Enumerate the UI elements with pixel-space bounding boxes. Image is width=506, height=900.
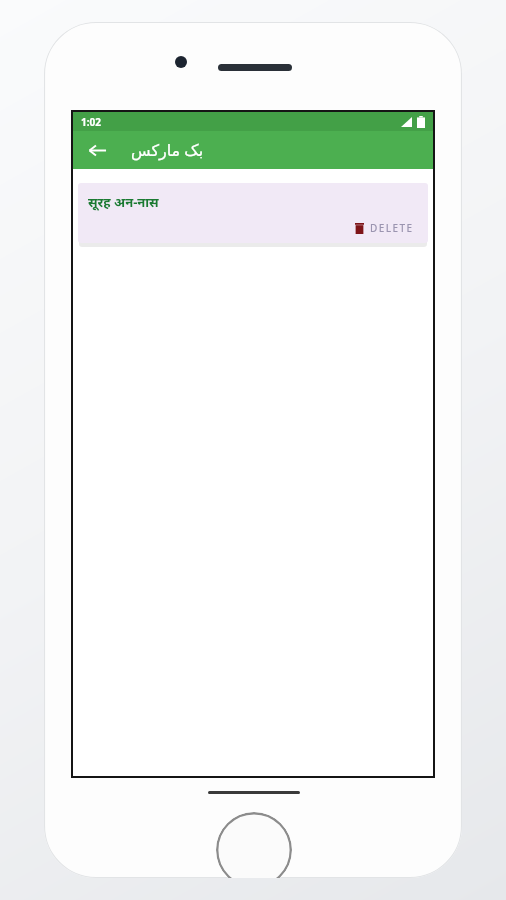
button[interactable]: DELETE — [351, 218, 418, 238]
button[interactable]: Back — [79, 132, 115, 168]
staticText: DELETE — [370, 221, 414, 235]
staticText: 1:02 — [81, 115, 101, 129]
button[interactable]: सूरह अन-नास — [78, 183, 428, 243]
staticText: सूरह अन-नास — [88, 193, 159, 211]
staticText: بک مارکس — [131, 139, 204, 161]
